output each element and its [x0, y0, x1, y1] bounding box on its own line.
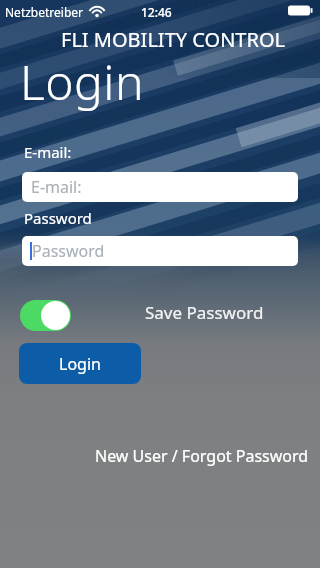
staticText: FLI MOBILITY CONTROL	[61, 26, 285, 53]
button[interactable]: E-mail:	[22, 172, 298, 202]
staticText: Password	[32, 240, 105, 262]
staticText: Netzbetreiber	[5, 4, 84, 20]
staticText: Save Password	[145, 301, 264, 324]
staticText: New User / Forgot Password	[95, 445, 309, 467]
button[interactable]: Login	[19, 343, 141, 384]
staticText: E-mail:	[31, 176, 82, 198]
button[interactable]: Password	[22, 236, 298, 266]
staticText: Login	[59, 353, 101, 375]
staticText: 12:46	[141, 4, 172, 20]
staticText: E-mail:	[24, 142, 72, 162]
button[interactable]: New User / Forgot Password	[95, 445, 309, 467]
button[interactable]	[20, 300, 71, 331]
staticText: Login	[20, 49, 144, 114]
staticText: Password	[24, 208, 92, 228]
